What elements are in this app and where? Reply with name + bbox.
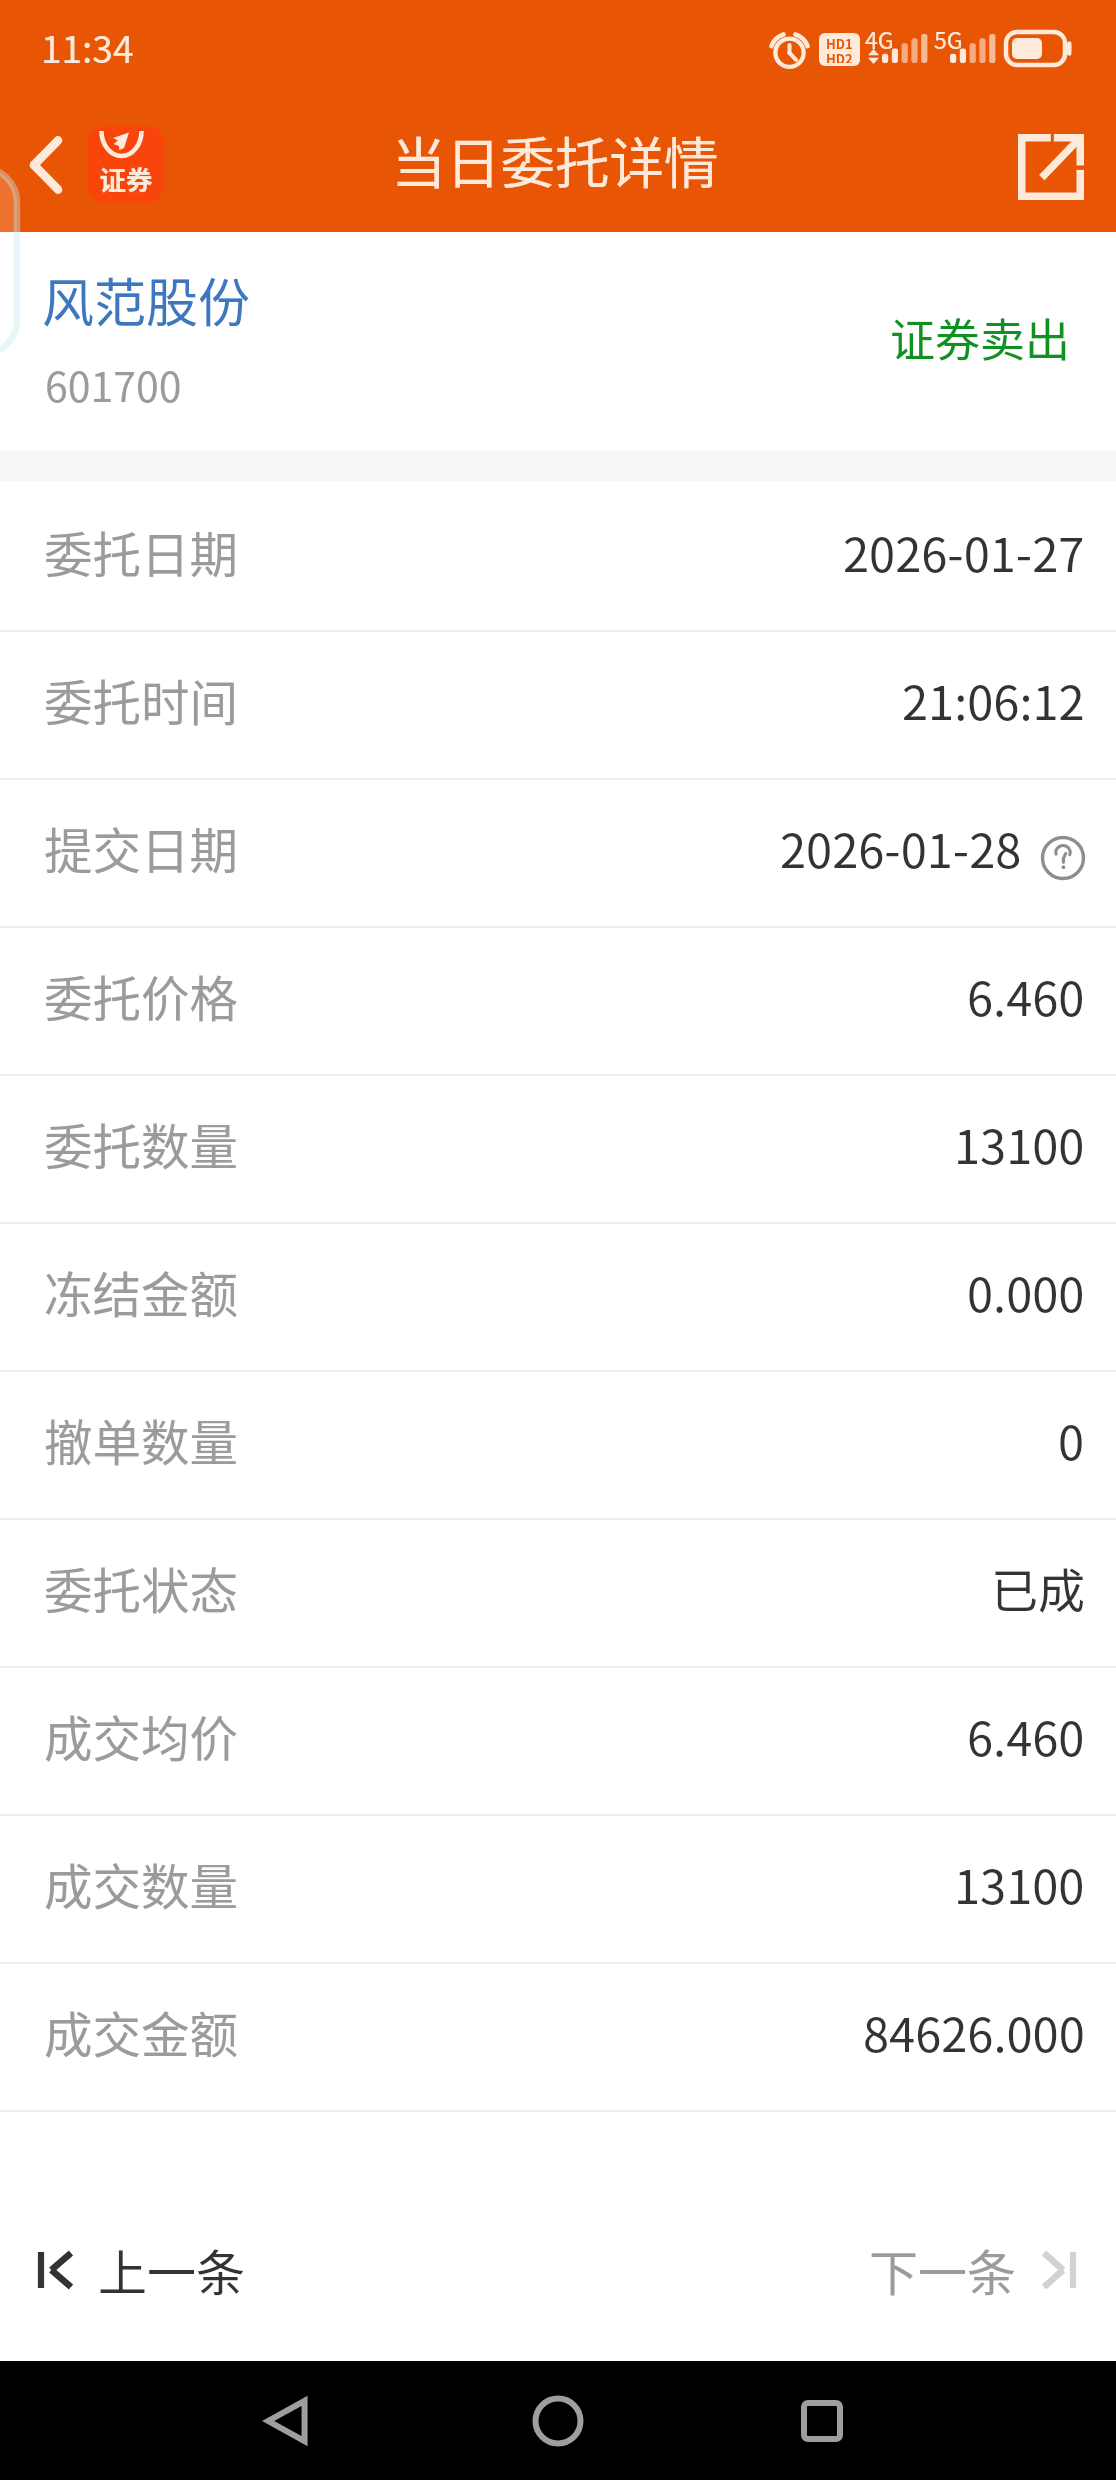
button[interactable]: Securities app	[88, 126, 164, 203]
button[interactable]: 成交均价	[0, 1668, 1116, 1816]
staticText: 2026-01-28	[780, 813, 1022, 881]
staticText: 5G	[934, 22, 963, 55]
button[interactable]: 下一条	[859, 2210, 1086, 2329]
button[interactable]: 提交日期	[0, 780, 1116, 928]
staticText: 11:34	[41, 20, 134, 74]
button[interactable]: Share	[1003, 119, 1099, 215]
button[interactable]: 成交数量	[0, 1816, 1116, 1964]
staticText: HD2	[826, 49, 853, 63]
staticText: 601700	[45, 354, 182, 413]
button[interactable]: 委托数量	[0, 1076, 1116, 1224]
staticText: 0	[1058, 1405, 1085, 1473]
staticText: 2026-01-27	[843, 517, 1085, 585]
button[interactable]: 成交金额	[0, 1964, 1116, 2112]
staticText: 风范股份	[42, 262, 251, 337]
staticText: 成交均价	[44, 1701, 239, 1771]
button[interactable]: 撤单数量	[0, 1372, 1116, 1520]
button[interactable]: Back	[248, 2381, 328, 2461]
staticText: 0.000	[967, 1257, 1085, 1325]
staticText: 提交日期	[44, 813, 239, 883]
staticText: 委托状态	[44, 1553, 239, 1623]
staticText: 6.460	[967, 1701, 1085, 1769]
button[interactable]: 委托时间	[0, 632, 1116, 780]
staticText: 下一条	[869, 2234, 1017, 2305]
button[interactable]: Recents	[782, 2381, 862, 2461]
button[interactable]: 委托日期	[0, 484, 1116, 632]
staticText: 证券	[88, 159, 164, 197]
staticText: 当日委托详情	[0, 120, 1113, 199]
button[interactable]: Home	[518, 2381, 598, 2461]
button[interactable]: 委托状态	[0, 1520, 1116, 1668]
staticText: HD1	[826, 34, 853, 53]
staticText: 证券卖出	[890, 305, 1071, 370]
button[interactable]: 上一条	[28, 2210, 256, 2329]
staticText: 成交数量	[44, 1849, 239, 1919]
staticText: 84626.000	[863, 1997, 1085, 2065]
button[interactable]: 委托价格	[0, 928, 1116, 1076]
staticText: 撤单数量	[44, 1405, 239, 1475]
staticText: 13100	[954, 1109, 1085, 1177]
staticText: 6.460	[967, 961, 1085, 1029]
staticText: 13100	[954, 1849, 1085, 1917]
staticText: 冻结金额	[44, 1257, 239, 1327]
staticText: 成交金额	[44, 1997, 239, 2067]
staticText: 已成	[991, 1553, 1085, 1621]
staticText: 4G	[865, 22, 894, 55]
staticText: 委托时间	[44, 665, 239, 735]
staticText: 上一条	[98, 2234, 246, 2305]
staticText: 委托日期	[44, 517, 239, 587]
staticText: 委托数量	[44, 1109, 239, 1179]
staticText: 委托价格	[44, 961, 239, 1031]
button[interactable]: Back	[4, 123, 88, 207]
button[interactable]: 冻结金额	[0, 1224, 1116, 1372]
staticText: 21:06:12	[902, 665, 1085, 733]
